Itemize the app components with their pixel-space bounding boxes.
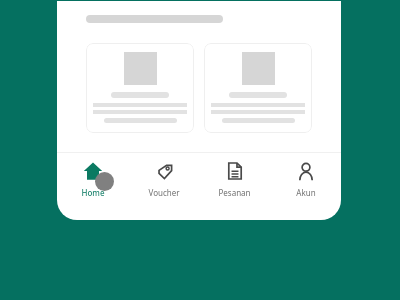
other: Akun [296,161,316,181]
other: Home [83,161,103,181]
button[interactable]: Akun [270,153,341,220]
other: Voucher [154,161,174,181]
button[interactable] [204,43,312,133]
staticText: Akun [296,187,316,198]
staticText: Pesanan [218,187,251,198]
button[interactable] [86,43,194,133]
button[interactable]: Pesanan [199,153,270,220]
staticText: Voucher [148,187,180,198]
button[interactable]: Voucher [128,153,199,220]
other: Pesanan [225,161,245,181]
button[interactable]: Home [57,153,128,220]
staticText: Home [81,187,105,198]
